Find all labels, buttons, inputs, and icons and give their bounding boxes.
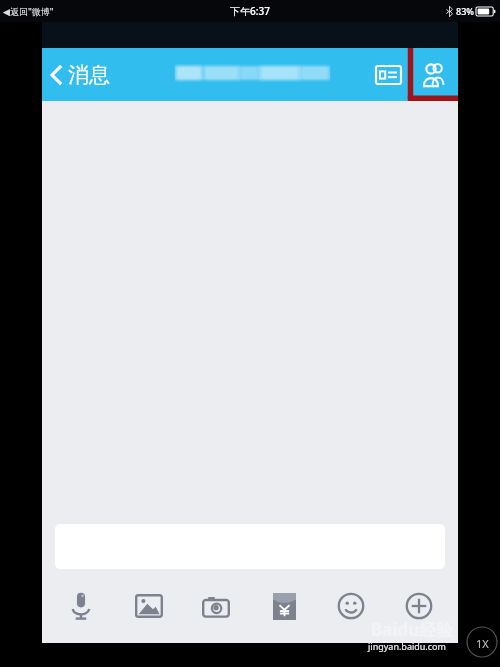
staticText: Baidu经验 xyxy=(371,618,454,641)
staticText: 消息 xyxy=(68,62,110,88)
button[interactable]: 名片 xyxy=(366,52,410,98)
button[interactable]: 表情 xyxy=(323,580,379,632)
button[interactable]: 红包 xyxy=(256,580,312,632)
staticText: ◀返回"微博" xyxy=(3,5,54,17)
button[interactable]: 拍照 xyxy=(188,580,244,632)
staticText: 1X xyxy=(476,636,489,651)
staticText: 83% xyxy=(456,5,474,17)
button[interactable]: 录音 xyxy=(53,580,109,632)
staticText: jingyan.baidu.com xyxy=(368,640,446,652)
button[interactable]: 群成员 xyxy=(410,52,458,98)
button[interactable]: 图片 xyxy=(121,580,177,632)
staticText: 下午6:37 xyxy=(230,4,270,18)
button[interactable]: 消息 xyxy=(42,56,120,94)
button[interactable]: 更多 xyxy=(391,580,447,632)
